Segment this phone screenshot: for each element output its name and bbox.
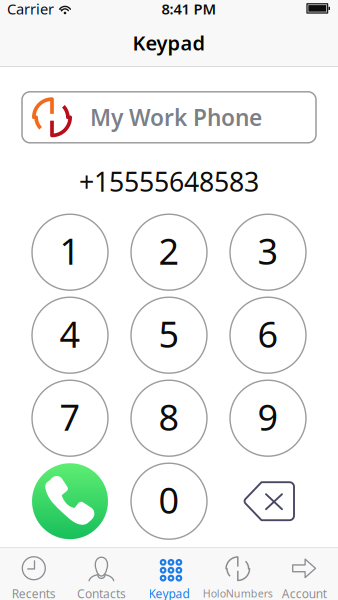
button[interactable]: 3	[230, 214, 306, 290]
staticText: HoloNumbers	[203, 586, 273, 600]
button[interactable]: Call	[32, 463, 108, 539]
staticText: Carrier	[7, 0, 54, 19]
staticText: My Work Phone	[90, 102, 262, 132]
staticText: Account	[282, 586, 327, 600]
button[interactable]: 9	[230, 380, 306, 456]
button[interactable]: 0	[131, 463, 207, 539]
staticText: 8	[158, 393, 179, 441]
staticText: 9	[257, 393, 278, 441]
button[interactable]: Keypad	[135, 547, 203, 600]
button[interactable]: My Work Phone	[22, 92, 316, 143]
staticText: 4	[59, 310, 80, 358]
staticText: Contacts	[77, 586, 126, 600]
button[interactable]: 2	[131, 214, 207, 290]
button[interactable]: 5	[131, 297, 207, 373]
staticText: Recents	[12, 586, 56, 600]
staticText: 6	[257, 310, 278, 358]
button[interactable]: Recents	[0, 547, 68, 600]
staticText: Keypad	[132, 29, 205, 56]
button[interactable]: 7	[32, 380, 108, 456]
staticText: Keypad	[148, 586, 189, 600]
button[interactable]: HoloNumbers	[203, 547, 270, 600]
staticText: 3	[257, 227, 278, 275]
button[interactable]: 6	[230, 297, 306, 373]
staticText: 0	[158, 476, 179, 524]
staticText: 2	[158, 227, 179, 275]
button[interactable]: Delete	[230, 463, 306, 539]
staticText: +15555648583	[79, 164, 259, 199]
button[interactable]: Contacts	[68, 547, 135, 600]
staticText: 8:41 PM	[161, 0, 216, 19]
button[interactable]: 8	[131, 380, 207, 456]
staticText: 5	[158, 310, 179, 358]
button[interactable]: 1	[32, 214, 108, 290]
staticText: 1	[59, 227, 80, 275]
button[interactable]: 4	[32, 297, 108, 373]
button[interactable]: Account	[270, 547, 338, 600]
staticText: 7	[59, 393, 80, 441]
